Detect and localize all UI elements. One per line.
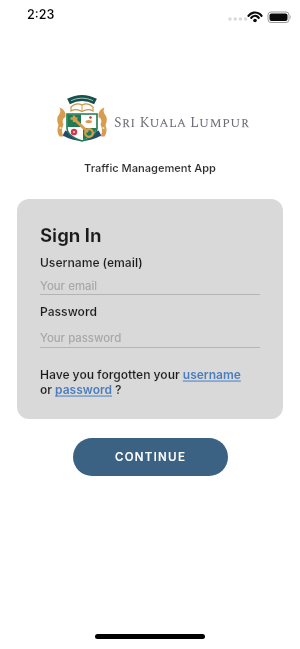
staticText: Password bbox=[40, 304, 97, 319]
staticText: Have you forgotten your username bbox=[40, 367, 241, 382]
staticText: Traffic Management App bbox=[0, 161, 300, 174]
staticText: CONTINUE bbox=[115, 450, 187, 464]
staticText: Your email bbox=[40, 279, 97, 293]
staticText: Username (email) bbox=[40, 255, 143, 270]
staticText: Your password bbox=[40, 331, 122, 345]
staticText: Sign In bbox=[40, 224, 102, 246]
staticText: Sri Kuala Lumpur bbox=[114, 112, 250, 133]
staticText: 2:23 bbox=[27, 7, 55, 22]
staticText: or password ? bbox=[40, 382, 122, 397]
